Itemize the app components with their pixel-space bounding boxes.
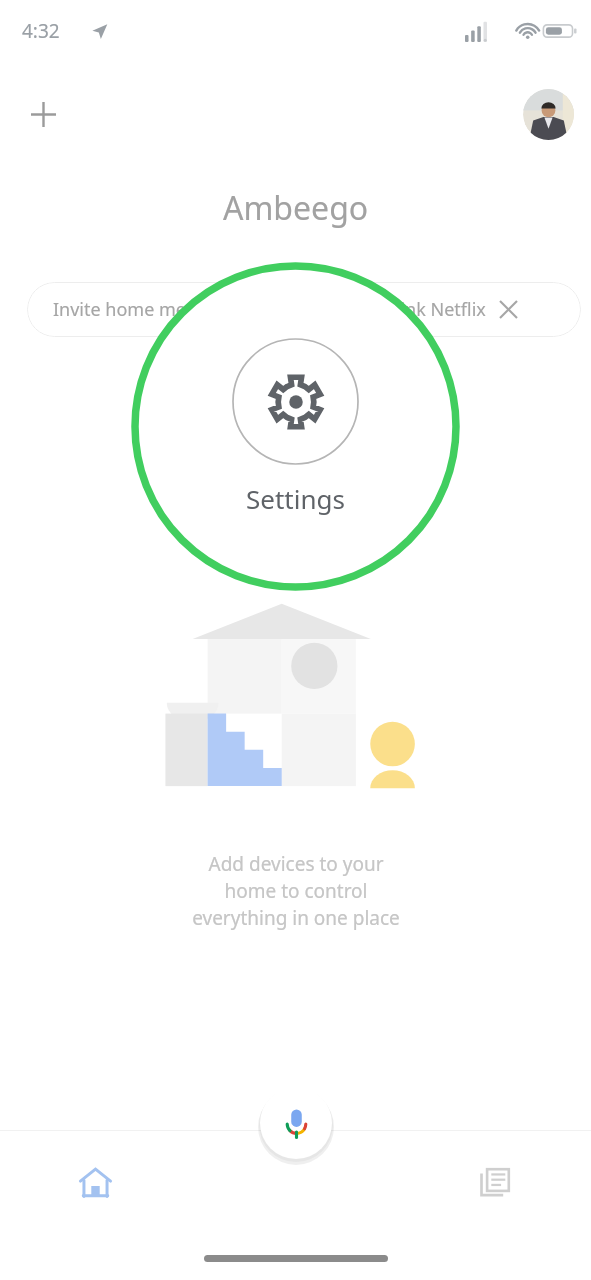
button[interactable]: Invite home members bbox=[27, 282, 327, 337]
staticText: Add devices to your home to control ever… bbox=[116, 851, 476, 931]
button[interactable]: Link Netflix bbox=[336, 282, 581, 337]
button[interactable]: Account profile bbox=[523, 89, 574, 140]
staticText: Settings bbox=[246, 481, 345, 516]
staticText: 4:32 bbox=[22, 18, 60, 44]
staticText: Link Netflix bbox=[391, 297, 486, 322]
button[interactable]: Add device or home bbox=[20, 91, 66, 137]
button[interactable]: Feed tab bbox=[400, 1130, 591, 1234]
staticText: Invite home members bbox=[53, 297, 241, 322]
button[interactable]: Google Assistant bbox=[256, 1083, 336, 1163]
button[interactable]: Home tab bbox=[0, 1130, 190, 1234]
button[interactable]: Settings bbox=[134, 265, 457, 588]
staticText: Ambeego bbox=[223, 186, 369, 230]
